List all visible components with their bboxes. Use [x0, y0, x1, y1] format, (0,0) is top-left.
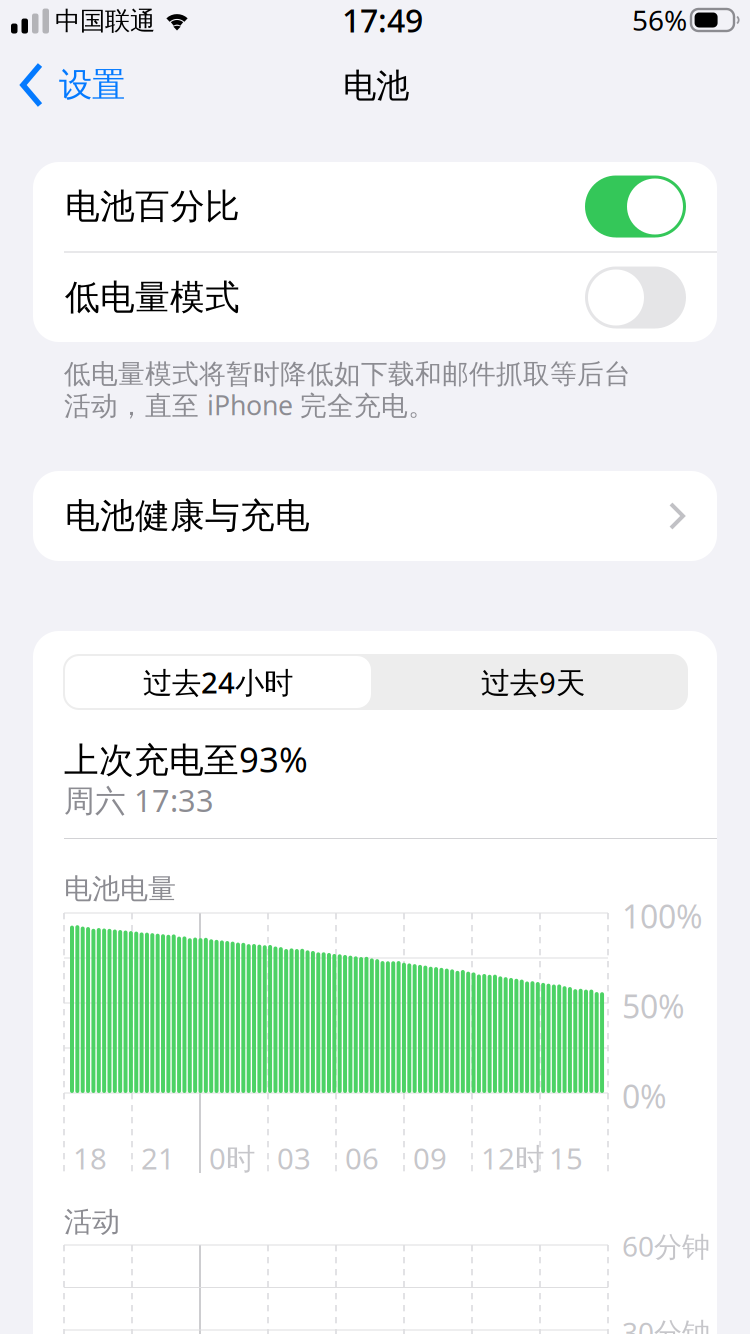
staticText: 过去24小时	[143, 662, 293, 701]
staticText: 0%	[622, 1075, 667, 1117]
staticText: 12时	[481, 1138, 544, 1177]
staticText: 17:49	[342, 0, 423, 41]
staticText: 电池健康与充电	[65, 495, 310, 537]
staticText: 低电量模式将暂时降低如下载和邮件抓取等后台	[64, 358, 631, 390]
staticText: 中国联通	[55, 5, 155, 36]
button[interactable]: 低电量模式	[33, 252, 717, 342]
staticText: 60分钟	[622, 1227, 710, 1265]
staticText: 活动，直至 iPhone 完全充电。	[64, 387, 435, 423]
staticText: 设置	[59, 64, 125, 105]
staticText: 100%	[622, 895, 703, 937]
staticText: 50%	[622, 985, 685, 1027]
staticText: 18	[73, 1138, 107, 1177]
button[interactable]: 过去24小时	[65, 656, 371, 708]
staticText: 电池百分比	[65, 185, 240, 228]
staticText: 09	[413, 1138, 447, 1177]
staticText: 06	[345, 1138, 379, 1177]
staticText: 低电量模式	[65, 276, 240, 319]
staticText: 30分钟	[622, 1313, 710, 1334]
staticText: 过去9天	[481, 662, 585, 701]
staticText: 电池电量	[64, 872, 176, 906]
button[interactable]: 电池健康与充电	[33, 471, 717, 561]
button[interactable]: 过去9天	[380, 656, 686, 708]
staticText: 电池	[343, 65, 409, 106]
staticText: 周六 17:33	[64, 780, 214, 820]
button[interactable]: 设置	[16, 57, 186, 113]
staticText: 上次充电至93%	[64, 736, 308, 782]
staticText: 03	[277, 1138, 311, 1177]
staticText: 21	[141, 1138, 175, 1177]
staticText: 0时	[209, 1138, 255, 1177]
staticText: 活动	[64, 1205, 120, 1239]
button[interactable]: 电池百分比	[33, 161, 717, 251]
staticText: 56%	[632, 1, 687, 39]
staticText: 15	[549, 1138, 583, 1177]
